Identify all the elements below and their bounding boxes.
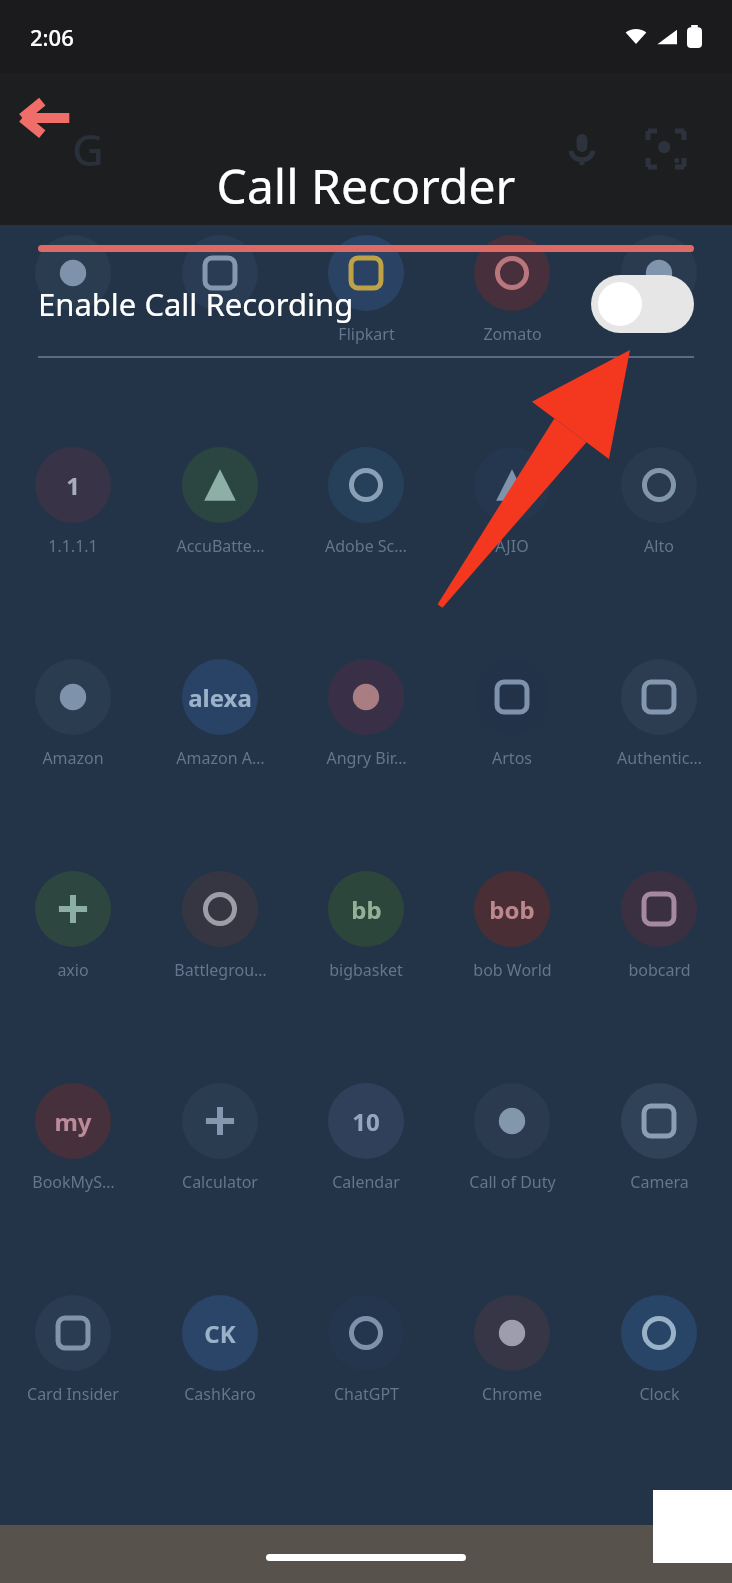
staticText: bigbasket	[329, 959, 403, 981]
button[interactable]: Enable Call Recording	[0, 252, 732, 356]
button[interactable]: Call of Duty	[442, 1083, 582, 1193]
staticText: Angry Bir…	[326, 747, 407, 769]
staticText: bb	[351, 893, 382, 926]
button[interactable]: bb	[296, 871, 436, 981]
button[interactable]: axio	[3, 871, 143, 981]
staticText: alexa	[188, 681, 252, 714]
staticText: Authentic…	[617, 747, 702, 769]
button[interactable]: Adobe Sc…	[296, 447, 436, 557]
button[interactable]: Flipkart	[296, 235, 436, 345]
staticText: Card Insider	[27, 1383, 119, 1405]
button[interactable]	[589, 235, 729, 345]
button[interactable]: bobcard	[589, 871, 729, 981]
button[interactable]: Card Insider	[3, 1295, 143, 1405]
staticText: Flipkart	[338, 323, 395, 345]
staticText: G	[72, 119, 104, 179]
staticText: my	[54, 1105, 92, 1138]
staticText: Calculator	[182, 1171, 258, 1193]
button[interactable]: my	[3, 1083, 143, 1193]
staticText: CK	[204, 1317, 236, 1350]
button[interactable]: Alto	[589, 447, 729, 557]
staticText: Camera	[630, 1171, 689, 1193]
staticText: 1.1.1.1	[48, 535, 98, 557]
staticText: 2:06	[30, 22, 74, 52]
staticText: Battlegrou…	[174, 959, 267, 981]
button[interactable]: Back	[18, 92, 72, 146]
staticText: Call Recorder	[0, 153, 732, 218]
staticText: AccuBatte…	[176, 535, 265, 557]
button[interactable]: Battlegrou…	[150, 871, 290, 981]
button[interactable]: AccuBatte…	[150, 447, 290, 557]
staticText: bob	[489, 893, 535, 926]
staticText: 10	[352, 1105, 380, 1138]
staticText: Alto	[644, 535, 674, 557]
staticText: Chrome	[482, 1383, 542, 1405]
button[interactable]	[3, 235, 143, 345]
button[interactable]: Angry Bir…	[296, 659, 436, 769]
staticText: bob World	[473, 959, 552, 981]
button[interactable]: bob	[442, 871, 582, 981]
staticText: ChatGPT	[334, 1383, 399, 1405]
staticText: Calendar	[332, 1171, 400, 1193]
button[interactable]: 10	[296, 1083, 436, 1193]
button[interactable]: Chrome	[442, 1295, 582, 1405]
staticText: Amazon A…	[176, 747, 265, 769]
button[interactable]: Clock	[589, 1295, 729, 1405]
button[interactable]: Google Lens	[648, 131, 684, 167]
button[interactable]: 1	[3, 447, 143, 557]
button[interactable]: Artos	[442, 659, 582, 769]
button[interactable]: AJIO	[442, 447, 582, 557]
button[interactable]: Zomato	[442, 235, 582, 345]
button[interactable]: Camera	[589, 1083, 729, 1193]
button[interactable]: CK	[150, 1295, 290, 1405]
button[interactable]	[150, 235, 290, 345]
staticText: CashKaro	[184, 1383, 256, 1405]
button[interactable]: Authentic…	[589, 659, 729, 769]
button[interactable]: Amazon	[3, 659, 143, 769]
staticText: Call of Duty	[469, 1171, 556, 1193]
staticText: Zomato	[483, 323, 542, 345]
button[interactable]: alexa	[150, 659, 290, 769]
staticText: Amazon	[42, 747, 104, 769]
staticText: bobcard	[628, 959, 691, 981]
staticText: axio	[57, 959, 89, 981]
staticText: AJIO	[495, 535, 529, 557]
button[interactable]: ChatGPT	[296, 1295, 436, 1405]
button[interactable]: Voice search	[564, 131, 600, 167]
button[interactable]: Calculator	[150, 1083, 290, 1193]
staticText: Enable Call Recording	[38, 283, 354, 325]
staticText: Artos	[492, 747, 532, 769]
staticText: Adobe Sc…	[325, 535, 407, 557]
staticText: Clock	[639, 1383, 680, 1405]
staticText: 1	[66, 469, 80, 502]
staticText: BookMyS…	[32, 1171, 115, 1193]
button[interactable]: Enable Call Recording switch, off	[591, 275, 694, 333]
